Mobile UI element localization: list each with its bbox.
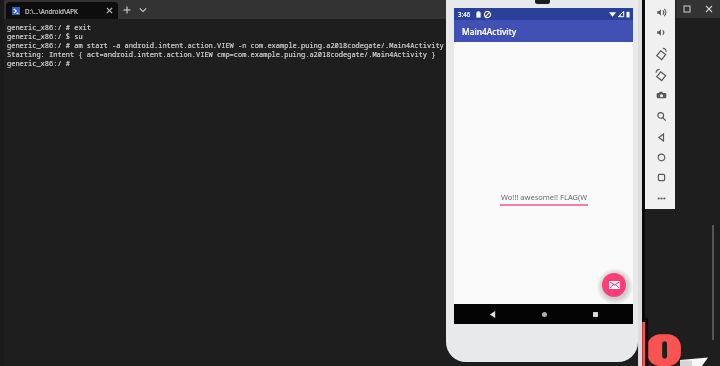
button[interactable]: D:\...\Android\APK (6, 2, 118, 19)
button[interactable]: Back (654, 130, 668, 144)
button[interactable]: Volume down (654, 25, 668, 39)
button[interactable]: Close (703, 3, 715, 15)
button[interactable]: Home (654, 150, 668, 164)
button[interactable]: Recent apps (654, 170, 668, 184)
button[interactable]: Compose email (602, 273, 626, 297)
staticText: 3:46 (458, 10, 471, 18)
staticText: generic_x86:/ # am start -a android.inte… (7, 41, 444, 50)
staticText: Wo!!! awesome!! FLAG(W (501, 192, 588, 202)
staticText: D:\...\Android\APK (25, 7, 78, 15)
button[interactable]: Recent apps (586, 304, 604, 324)
staticText: generic_x86:/ # (7, 59, 75, 68)
button[interactable]: Close tab (104, 5, 115, 16)
button[interactable]: New tab (121, 4, 133, 16)
button[interactable]: Home (535, 304, 553, 324)
button[interactable]: Tab options (137, 4, 149, 16)
button[interactable]: Rotate right (654, 68, 668, 82)
button[interactable]: Rotate left (654, 47, 668, 61)
button[interactable]: Take screenshot (654, 88, 668, 102)
staticText: generic_x86:/ $ su (7, 32, 83, 41)
button[interactable]: Maximize (681, 3, 693, 15)
staticText: Main4Activity (462, 26, 517, 37)
staticText: Starting: Intent { act=android.intent.ac… (7, 50, 436, 59)
button[interactable]: Back (483, 304, 501, 324)
button[interactable]: More options (654, 191, 668, 205)
button[interactable]: Zoom (654, 109, 668, 123)
button[interactable]: Volume up (654, 5, 668, 19)
staticText: generic_x86:/ # exit (7, 23, 91, 32)
